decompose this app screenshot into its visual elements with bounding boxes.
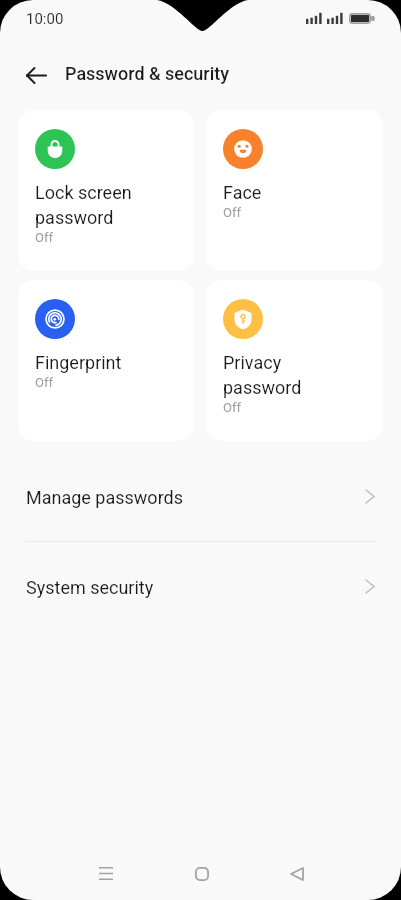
staticText: Face [223,182,262,203]
button[interactable]: Fingerprint [18,280,194,441]
button[interactable]: Privacy password [206,280,383,441]
button[interactable]: Home [174,847,230,900]
button[interactable]: Back [269,847,325,900]
staticText: Off [223,205,241,220]
staticText: Lock screen password [35,182,132,228]
staticText: Privacy password [223,352,302,398]
staticText: Password & security [65,63,230,84]
button[interactable]: Manage passwords [0,452,401,541]
button[interactable]: Back [14,58,58,92]
staticText: System security [26,577,154,598]
button[interactable]: Lock screen password [18,110,194,271]
staticText: Off [35,230,53,245]
button[interactable]: System security [0,542,401,631]
staticText: Fingerprint [35,352,122,373]
staticText: Manage passwords [26,487,183,508]
staticText: Off [223,400,241,415]
staticText: 10:00 [26,10,64,28]
button[interactable]: Recent apps [78,847,134,900]
staticText: Off [35,375,53,390]
button[interactable]: Face [206,110,383,271]
